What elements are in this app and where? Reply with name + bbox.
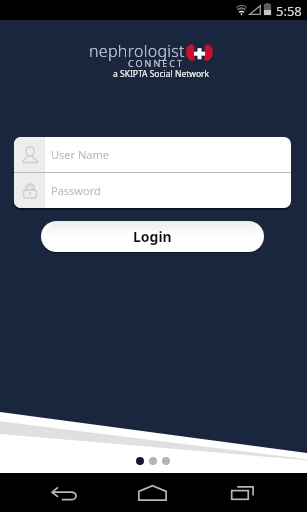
- button[interactable]: Recent apps: [218, 477, 266, 509]
- button[interactable]: [149, 457, 157, 465]
- button[interactable]: Home: [128, 477, 176, 509]
- button[interactable]: Back: [40, 477, 88, 509]
- staticText: 5:58: [276, 2, 302, 20]
- staticText: Login: [133, 227, 172, 246]
- button[interactable]: Password: [14, 173, 291, 208]
- button[interactable]: User Name: [14, 137, 291, 172]
- staticText: Password: [51, 183, 101, 198]
- staticText: CONNECT: [128, 57, 184, 69]
- button[interactable]: Login: [41, 221, 264, 252]
- staticText: nephrologist: [89, 40, 185, 62]
- staticText: a SKIPTA Social Network: [113, 68, 210, 80]
- button[interactable]: [136, 457, 144, 465]
- staticText: User Name: [51, 147, 109, 162]
- button[interactable]: [162, 457, 170, 465]
